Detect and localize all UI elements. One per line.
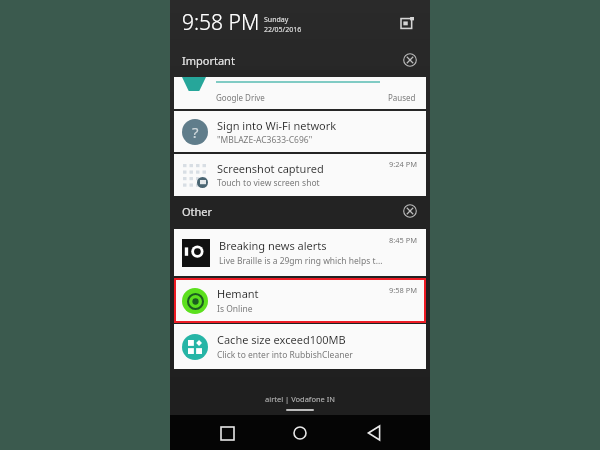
staticText: Live Braille is a 29gm ring which helps …	[219, 255, 386, 267]
staticText: 22/05/2016	[264, 25, 302, 35]
staticText: Breaking news alerts	[219, 238, 327, 253]
button[interactable]: Clear Other notifications	[400, 201, 420, 221]
button[interactable]: Home	[283, 416, 317, 450]
staticText: Sign into Wi-Fi network	[217, 118, 337, 133]
staticText: airtel | Vodafone IN	[265, 394, 336, 404]
button[interactable]: Clear Important notifications	[400, 50, 420, 70]
staticText: "MBLAZE-AC3633-C696"	[217, 134, 313, 146]
staticText: 9:58 PM	[389, 285, 418, 295]
staticText: Is Online	[217, 303, 253, 315]
staticText: Other	[182, 204, 213, 219]
staticText: Paused	[388, 92, 416, 103]
button[interactable]: Settings	[396, 12, 418, 34]
staticText: Important	[182, 53, 235, 68]
staticText: 9:58 PM	[182, 8, 260, 37]
staticText: Sunday	[264, 15, 289, 25]
button[interactable]: Back	[357, 416, 391, 450]
button[interactable]: Hemant	[176, 280, 424, 321]
button[interactable]: Screenshot captured	[174, 154, 426, 196]
staticText: Hemant	[217, 286, 259, 301]
staticText: ?	[192, 122, 199, 142]
staticText: Cache size exceed100MB	[217, 332, 346, 347]
button[interactable]: ?	[174, 111, 426, 152]
staticText: 8:45 PM	[389, 235, 418, 245]
button[interactable]: Cache size exceed100MB	[174, 324, 426, 369]
button[interactable]: Google Drive	[174, 77, 426, 109]
staticText: Screenshot captured	[217, 161, 324, 176]
staticText: Click to enter into RubbishCleaner	[217, 349, 353, 361]
staticText: Google Drive	[216, 92, 265, 103]
staticText: 9:24 PM	[389, 159, 418, 169]
button[interactable]: Breaking news alerts	[174, 229, 426, 276]
button[interactable]: Recents	[210, 416, 244, 450]
staticText: Touch to view screen shot	[217, 177, 320, 189]
